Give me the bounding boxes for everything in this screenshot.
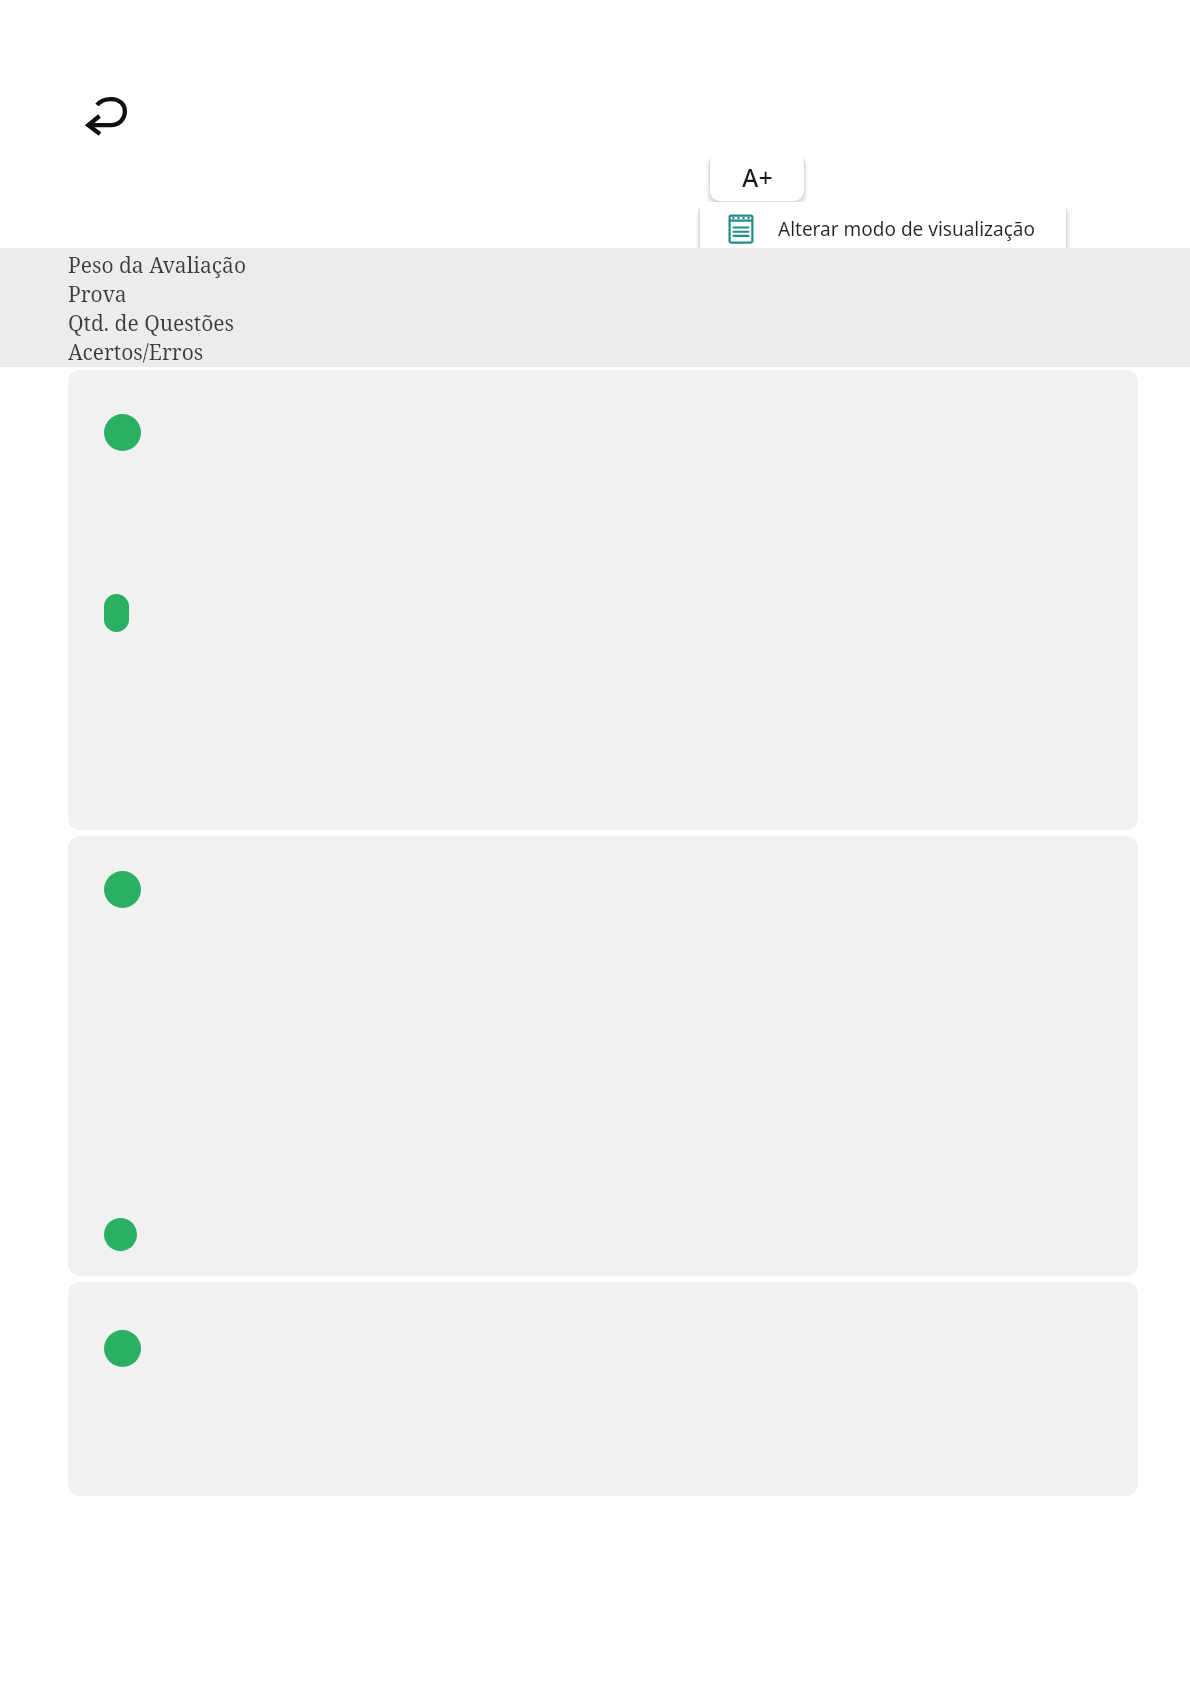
staticText: A+ — [742, 160, 773, 194]
button[interactable] — [68, 836, 1138, 1276]
button[interactable] — [68, 370, 1138, 830]
staticText: Peso da Avaliação — [68, 251, 246, 280]
button[interactable] — [68, 1282, 1138, 1496]
button[interactable]: Alterar modo de visualização — [700, 202, 1066, 255]
staticText: Acertos/Erros — [68, 338, 204, 367]
staticText: Alterar modo de visualização — [778, 216, 1035, 242]
staticText: Prova — [68, 280, 127, 309]
button[interactable]: Voltar — [82, 92, 132, 142]
staticText: Qtd. de Questões — [68, 309, 235, 338]
button[interactable]: Aumentar fonte — [710, 152, 804, 201]
